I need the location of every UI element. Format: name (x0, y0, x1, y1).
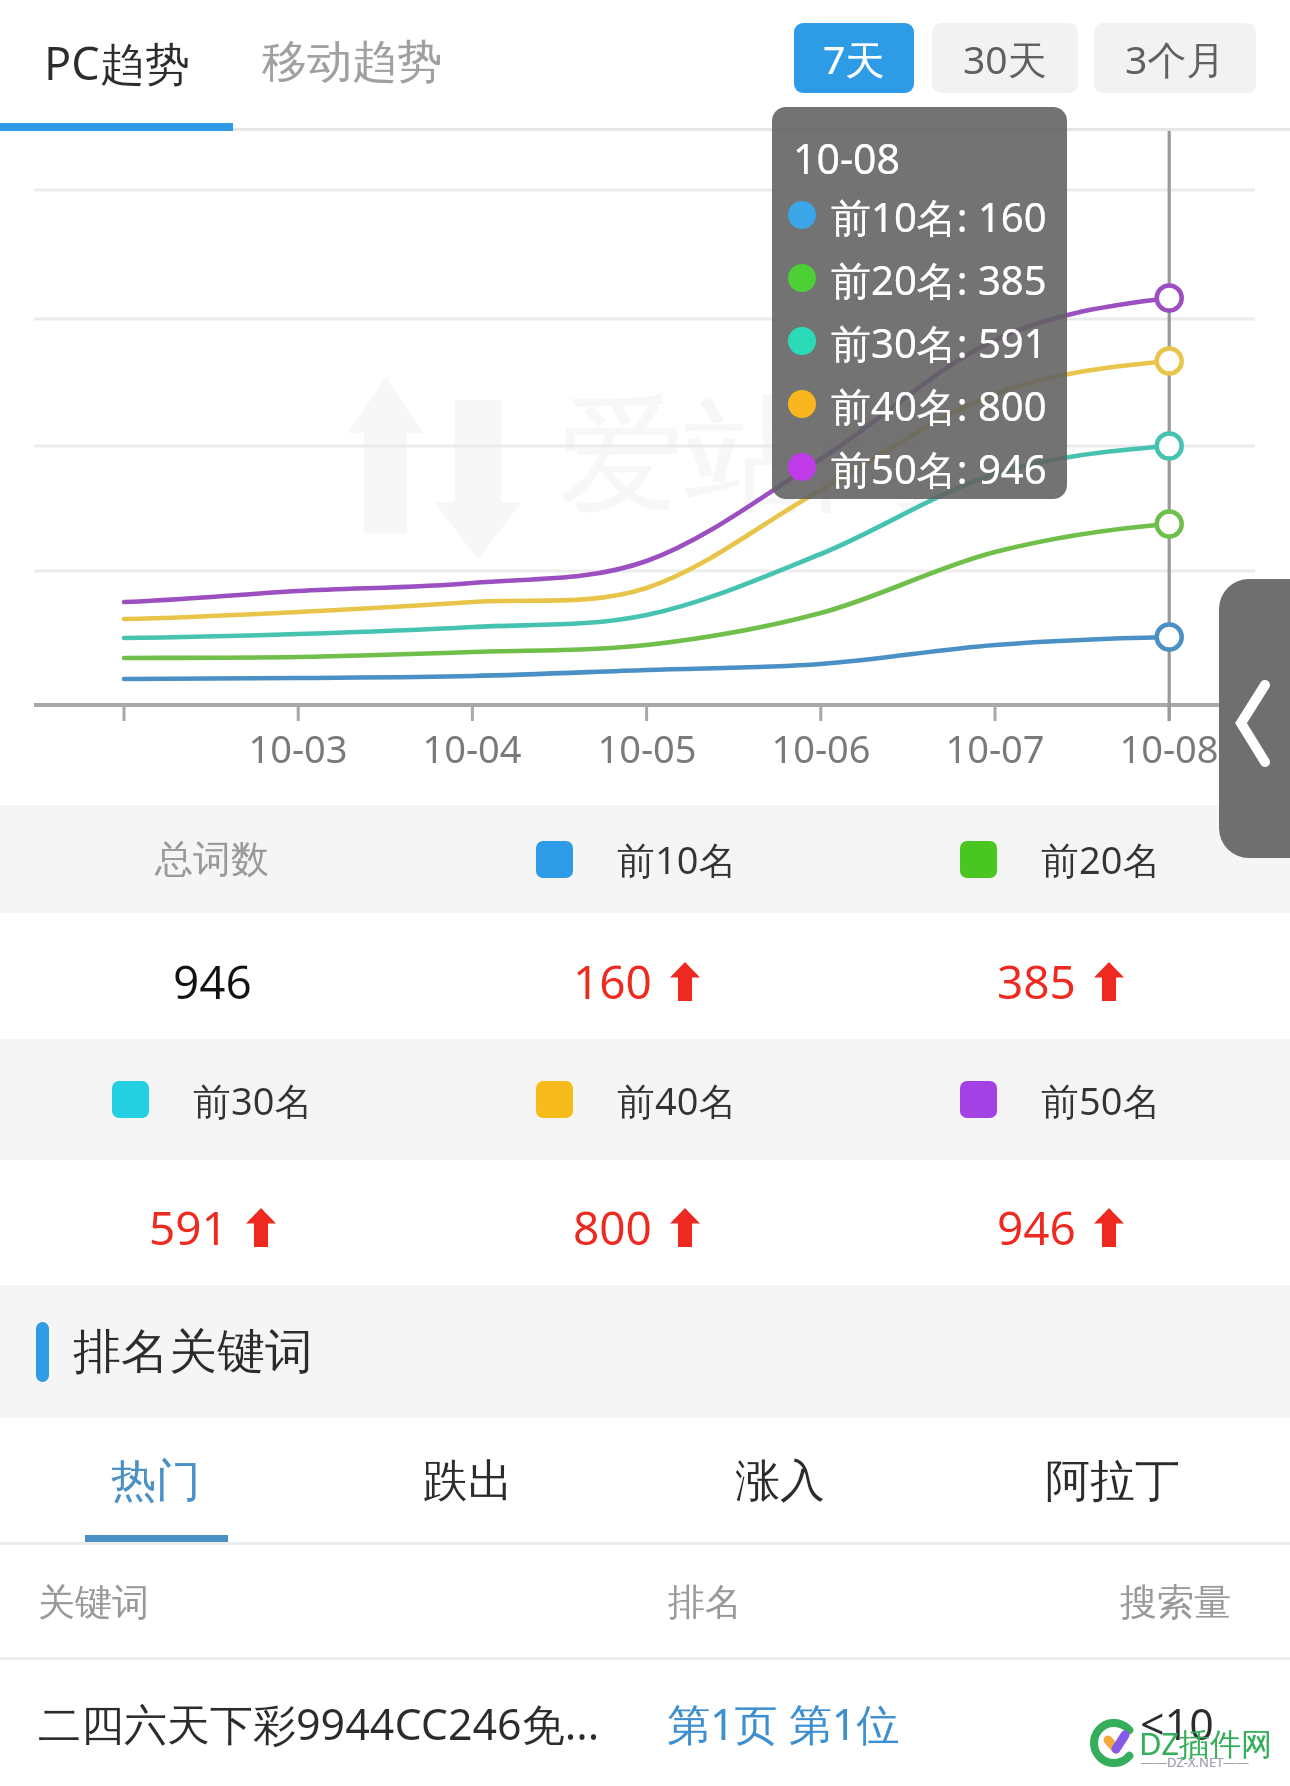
button[interactable]: 阿拉丁 (936, 1418, 1248, 1545)
staticText: 7天 (823, 32, 885, 85)
button[interactable]: 前50名 (848, 1039, 1272, 1160)
staticText: 排名关键词 (73, 1322, 313, 1382)
staticText: 946 (997, 1196, 1076, 1259)
staticText: 10-06 (771, 722, 871, 774)
staticText: 阿拉丁 (1045, 1453, 1180, 1510)
staticText: DZ插件网 (1139, 1722, 1273, 1764)
staticText: 3个月 (1125, 32, 1226, 85)
button[interactable]: 3个月 (1094, 23, 1256, 93)
staticText: 10-04 (422, 722, 522, 774)
staticText: 前10名 (617, 833, 737, 885)
staticText: 热门 (111, 1453, 201, 1510)
staticText: 跌出 (423, 1453, 513, 1510)
staticText: 10-08 (793, 130, 901, 186)
button[interactable]: 30天 (932, 23, 1078, 93)
button[interactable]: 涨入 (624, 1418, 936, 1545)
staticText: PC趋势 (44, 32, 190, 93)
staticText: 10-07 (945, 722, 1045, 774)
staticText: 10-03 (248, 722, 348, 774)
staticText: 前20名 (1041, 833, 1161, 885)
button[interactable]: 前40名 (424, 1039, 848, 1160)
staticText: 总词数 (155, 835, 269, 883)
button[interactable]: 热门 (0, 1418, 312, 1545)
staticText: 涨入 (735, 1453, 825, 1510)
staticText: 前20名: 385 (831, 252, 1047, 307)
button[interactable]: Open side panel (1219, 579, 1290, 858)
staticText: 946 (173, 950, 252, 1013)
staticText: 爱站网 (558, 377, 936, 536)
button[interactable]: 二四六天下彩9944CC246免... (0, 1660, 1290, 1786)
staticText: 800 (573, 1196, 652, 1259)
button[interactable]: 前30名 (0, 1039, 424, 1160)
button[interactable]: 前20名 (848, 805, 1272, 913)
staticText: 591 (149, 1196, 228, 1259)
staticText: 385 (997, 950, 1076, 1013)
staticText: 排名 (668, 1579, 742, 1626)
staticText: 30天 (963, 32, 1047, 85)
button[interactable]: PC趋势 (0, 0, 233, 124)
staticText: 第1页 第1位 (667, 1694, 900, 1753)
staticText: 10-08 (1119, 722, 1219, 774)
staticText: 关键词 (38, 1579, 149, 1626)
staticText: 10-05 (597, 722, 697, 774)
staticText: 前30名 (193, 1074, 313, 1126)
staticText: <10 (1140, 1694, 1214, 1753)
staticText: 移动趋势 (262, 34, 442, 91)
staticText: 前30名: 591 (831, 315, 1047, 370)
staticText: 前40名 (617, 1074, 737, 1126)
button[interactable]: 7天 (794, 23, 914, 93)
button[interactable]: 总词数 (0, 805, 424, 913)
staticText: 前40名: 800 (831, 378, 1047, 433)
staticText: 前50名: 946 (831, 441, 1047, 496)
staticText: 前50名 (1041, 1074, 1161, 1126)
staticText: 前10名: 160 (831, 189, 1047, 244)
button[interactable]: 移动趋势 (233, 0, 470, 124)
button[interactable]: 前10名 (424, 805, 848, 913)
staticText: 二四六天下彩9944CC246免... (38, 1694, 600, 1753)
staticText: 搜索量 (1120, 1579, 1231, 1626)
staticText: ——DZ-X.NET—— (1141, 1753, 1249, 1771)
button[interactable]: 跌出 (312, 1418, 624, 1545)
staticText: 160 (573, 950, 652, 1013)
